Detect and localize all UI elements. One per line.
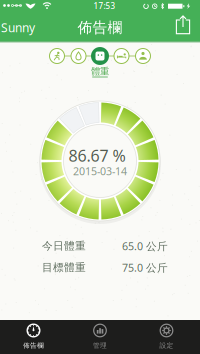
staticText: 佈告欄 <box>77 18 122 36</box>
button[interactable]: 體重 <box>91 47 109 65</box>
button[interactable]: 運動 <box>49 48 64 63</box>
staticText: 管理 <box>93 341 107 350</box>
staticText: 目標體重 <box>42 261 86 274</box>
staticText: 86.67 % <box>68 145 125 166</box>
button[interactable]: Sunny <box>1 19 35 35</box>
button[interactable]: 佈告欄 <box>0 320 66 354</box>
staticText: Sunny <box>1 19 35 35</box>
staticText: 65.0 公斤 <box>122 239 168 253</box>
staticText: 體重 <box>91 66 109 77</box>
staticText: 今日體重 <box>42 239 86 252</box>
staticText: 2015-03-14 <box>73 164 127 178</box>
button[interactable]: 睡眠 <box>114 48 129 63</box>
button[interactable]: 飲食 <box>71 48 86 63</box>
button[interactable]: 設定 <box>133 320 199 354</box>
button[interactable]: 體重 <box>92 67 108 78</box>
staticText: 17:53 <box>93 1 115 11</box>
staticText: 佈告欄 <box>23 341 44 350</box>
button[interactable]: Share <box>173 14 193 36</box>
staticText: 75.0 公斤 <box>122 260 168 275</box>
button[interactable]: 管理 <box>67 320 133 354</box>
button[interactable]: 個人 <box>135 48 150 63</box>
staticText: 設定 <box>159 341 173 350</box>
